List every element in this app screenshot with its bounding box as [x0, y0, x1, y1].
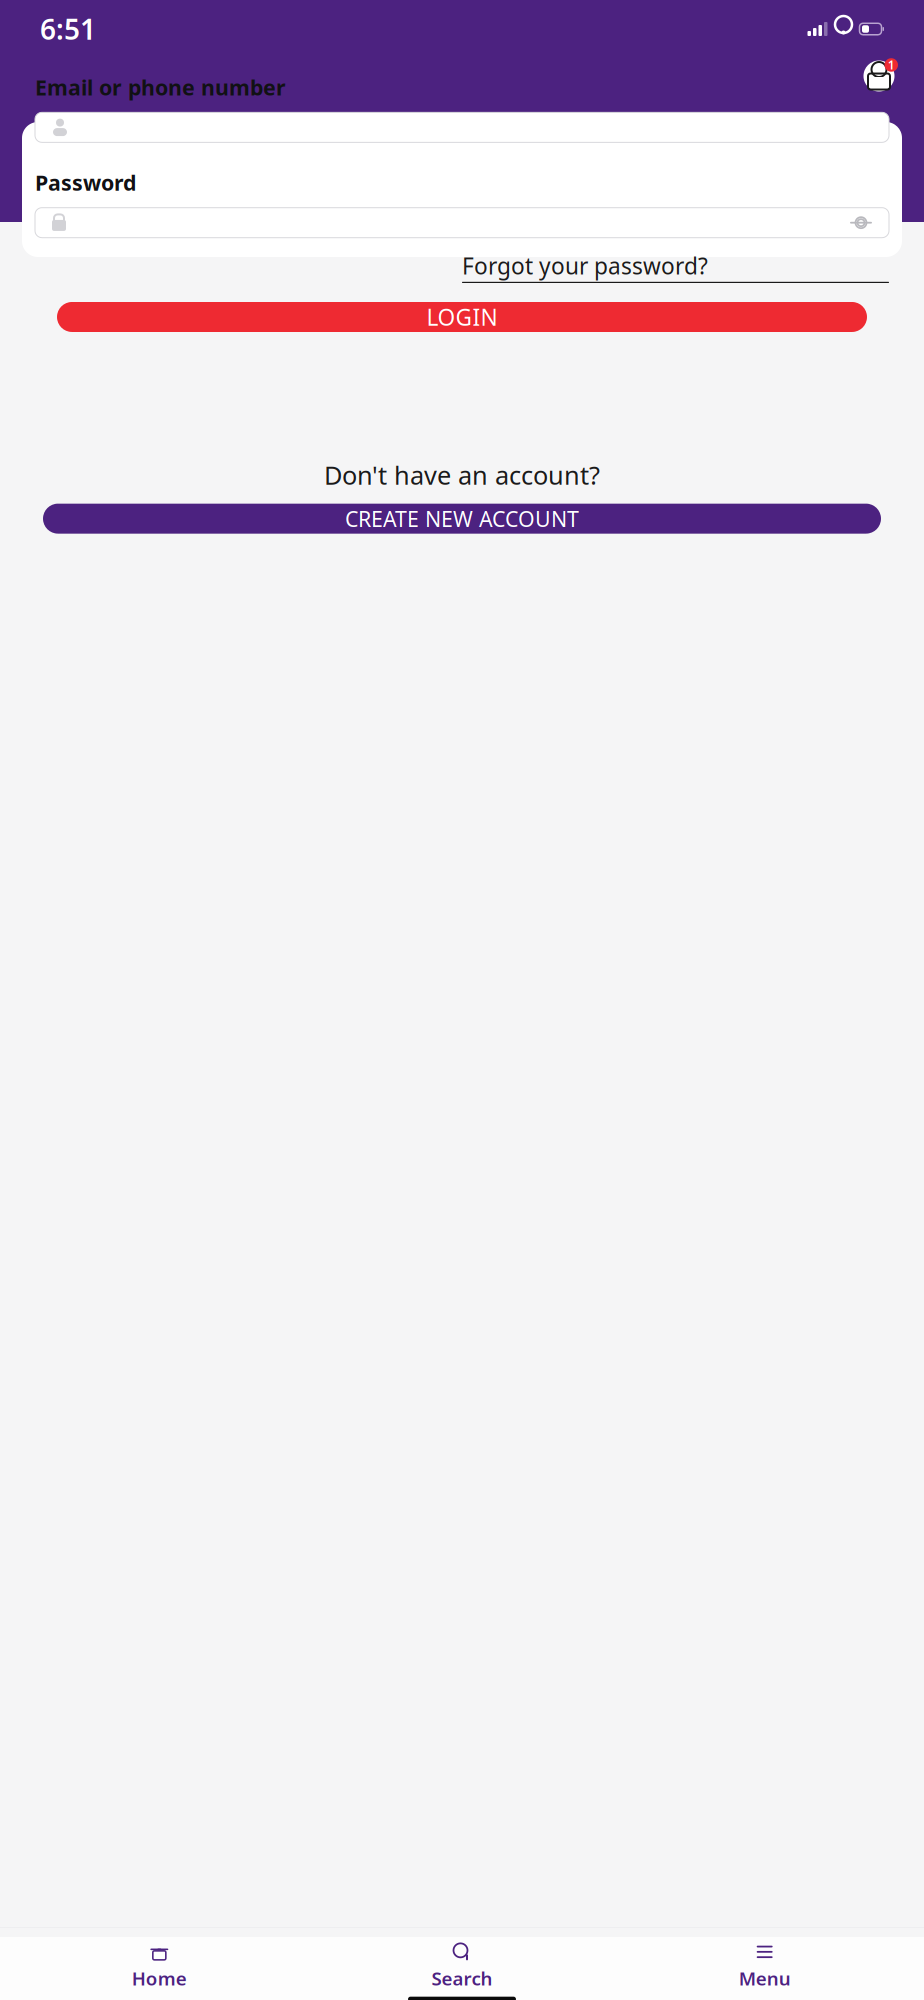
- button[interactable]: Show password: [849, 213, 873, 233]
- staticText: Password: [35, 168, 136, 197]
- staticText: Forgot your password?: [462, 251, 708, 281]
- staticText: 6:51: [40, 10, 96, 48]
- staticText: 1: [888, 57, 895, 73]
- button[interactable]: Cart, 1 item: [859, 56, 899, 96]
- staticText: Home: [132, 1966, 187, 1991]
- button[interactable]: Search: [311, 1936, 613, 1997]
- staticText: CREATE NEW ACCOUNT: [345, 504, 579, 533]
- button[interactable]: Forgot your password?: [462, 251, 889, 283]
- button[interactable]: Home: [8, 1936, 311, 1997]
- button[interactable]: Menu: [613, 1936, 916, 1997]
- staticText: Don't have an account?: [324, 458, 600, 492]
- button[interactable]: CREATE NEW ACCOUNT: [43, 504, 881, 534]
- staticText: LOGIN: [404, 130, 520, 178]
- button[interactable]: LOGIN: [57, 302, 867, 332]
- staticText: Search: [431, 1966, 492, 1991]
- staticText: Email or phone number: [35, 73, 286, 101]
- staticText: Menu: [739, 1966, 791, 1991]
- staticText: LOGIN: [426, 302, 497, 332]
